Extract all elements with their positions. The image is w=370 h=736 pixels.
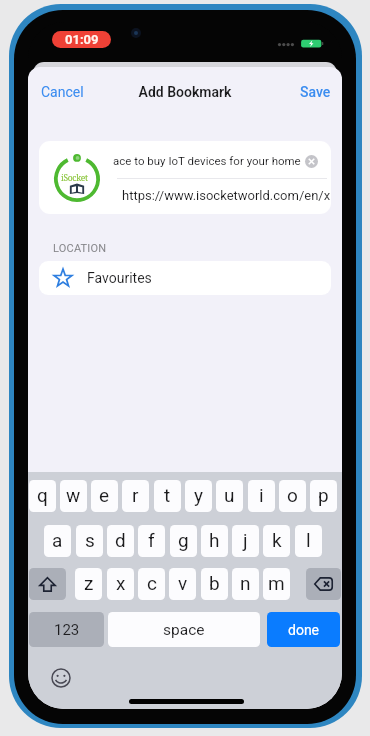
staticText: a: [52, 529, 63, 551]
staticText: n: [240, 572, 251, 594]
button[interactable]: n: [232, 568, 259, 600]
button[interactable]: v: [169, 568, 196, 600]
staticText: 01:09: [65, 32, 99, 47]
staticText: f: [148, 529, 155, 551]
staticText: d: [115, 529, 126, 551]
staticText: b: [209, 572, 220, 594]
button[interactable]: e: [91, 480, 118, 512]
staticText: w: [66, 484, 81, 506]
staticText: space: [163, 621, 205, 639]
button[interactable]: h: [201, 525, 228, 557]
button[interactable]: Emoji keyboard: [51, 668, 71, 688]
staticText: Save: [300, 84, 331, 100]
button[interactable]: j: [232, 525, 259, 557]
staticText: y: [194, 484, 203, 506]
button[interactable]: f: [138, 525, 165, 557]
staticText: s: [85, 529, 95, 551]
staticText: m: [268, 572, 285, 594]
button[interactable]: z: [75, 568, 102, 600]
button[interactable]: 123: [29, 612, 104, 647]
button[interactable]: x: [107, 568, 134, 600]
staticText: r: [132, 484, 139, 506]
staticText: Add Bookmark: [28, 84, 342, 100]
staticText: https://www.isocketworld.com/en/x: [122, 188, 331, 203]
button[interactable]: Favourites: [39, 261, 331, 295]
button[interactable]: c: [138, 568, 165, 600]
staticText: LOCATION: [53, 242, 107, 255]
staticText: i: [259, 484, 264, 506]
staticText: Favourites: [87, 270, 152, 286]
staticText: u: [224, 484, 235, 506]
staticText: iSocket: [61, 172, 88, 184]
button[interactable]: q: [29, 480, 56, 512]
staticText: g: [178, 529, 189, 551]
staticText: x: [116, 572, 126, 594]
staticText: q: [37, 484, 48, 506]
staticText: e: [99, 484, 110, 506]
staticText: c: [147, 572, 157, 594]
button[interactable]: [306, 568, 341, 600]
button[interactable]: Save: [292, 79, 339, 105]
staticText: Cancel: [41, 84, 84, 100]
staticText: o: [287, 484, 298, 506]
button[interactable]: y: [185, 480, 212, 512]
staticText: done: [288, 622, 320, 638]
button[interactable]: t: [154, 480, 181, 512]
button[interactable]: r: [122, 480, 149, 512]
button[interactable]: p: [310, 480, 337, 512]
staticText: t: [164, 484, 171, 506]
staticText: l: [306, 529, 311, 551]
button[interactable]: i: [248, 480, 275, 512]
button[interactable]: space: [108, 612, 260, 647]
button[interactable]: u: [216, 480, 243, 512]
staticText: ace to buy IoT devices for your home: [113, 154, 301, 167]
button[interactable]: o: [279, 480, 306, 512]
button[interactable]: a: [44, 525, 71, 557]
staticText: 123: [54, 621, 80, 639]
staticText: p: [318, 484, 329, 506]
button[interactable]: w: [60, 480, 87, 512]
button[interactable]: d: [107, 525, 134, 557]
staticText: j: [243, 529, 248, 551]
button[interactable]: [29, 568, 66, 600]
button[interactable]: Clear text: [305, 155, 318, 168]
staticText: v: [178, 572, 188, 594]
button[interactable]: g: [170, 525, 197, 557]
button[interactable]: s: [76, 525, 103, 557]
staticText: z: [84, 572, 94, 594]
button[interactable]: done: [267, 612, 340, 647]
staticText: k: [272, 529, 282, 551]
button[interactable]: k: [263, 525, 290, 557]
button[interactable]: m: [263, 568, 290, 600]
button[interactable]: l: [295, 525, 322, 557]
button[interactable]: b: [201, 568, 228, 600]
button[interactable]: Cancel: [33, 79, 92, 105]
staticText: h: [209, 529, 220, 551]
